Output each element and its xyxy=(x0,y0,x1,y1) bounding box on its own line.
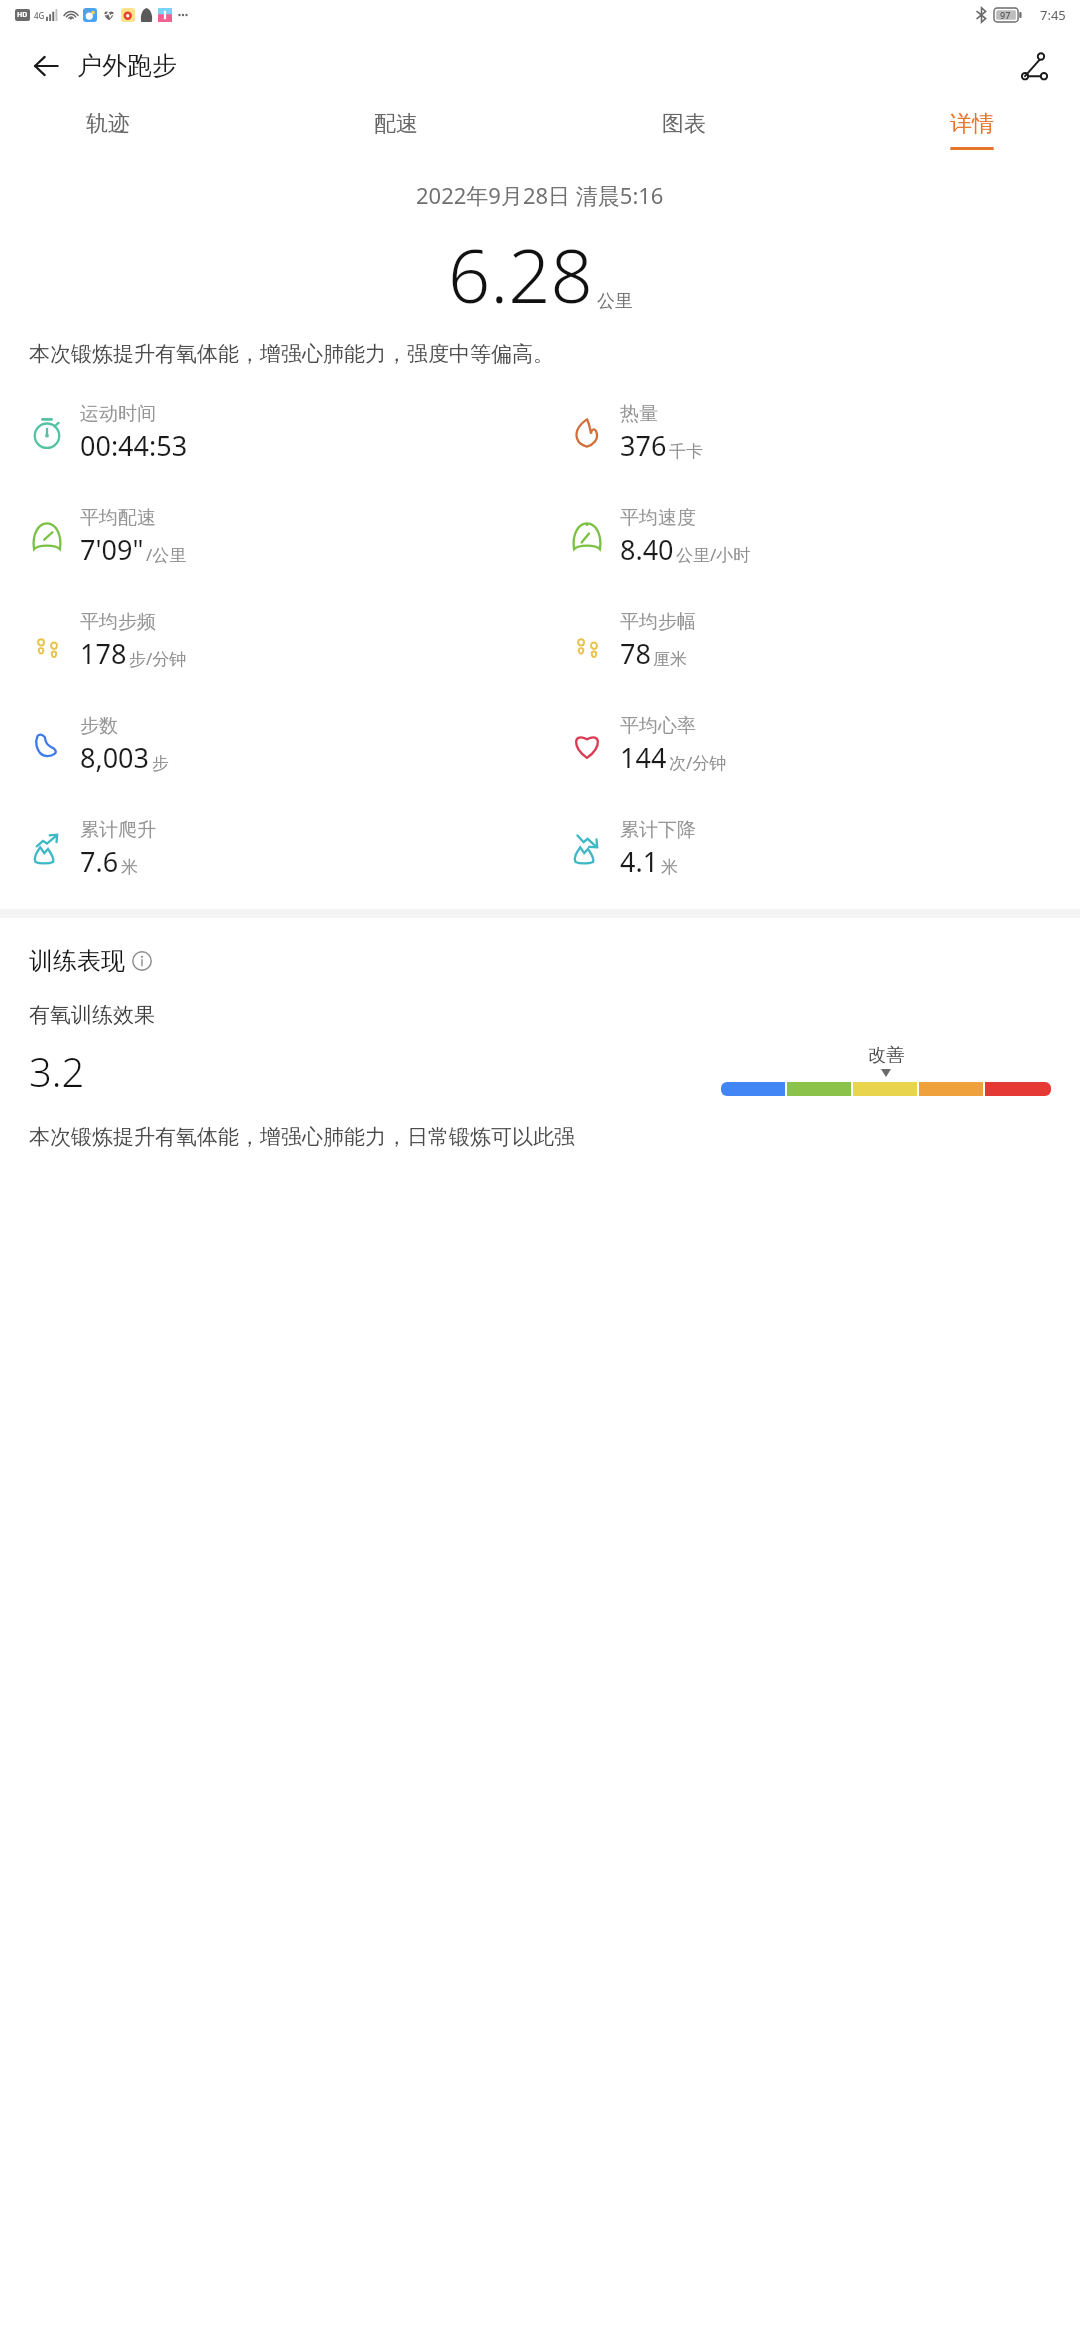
button[interactable]: 平均步幅 xyxy=(540,589,1080,693)
staticText: 户外跑步 xyxy=(77,50,177,81)
button[interactable]: 平均速度 xyxy=(540,485,1080,589)
staticText: 2022年9月28日 清晨5:16 xyxy=(416,180,664,210)
staticText: 平均速度 xyxy=(620,506,696,530)
staticText: HD xyxy=(17,10,28,20)
staticText: 步数 xyxy=(80,714,118,738)
button[interactable]: 图表 xyxy=(656,102,712,158)
staticText: 97 xyxy=(1000,9,1011,21)
staticText: 7'09" xyxy=(80,531,144,568)
button[interactable]: 热量 xyxy=(540,381,1080,485)
staticText: 平均心率 xyxy=(620,714,696,738)
staticText: 运动时间 xyxy=(80,402,156,426)
staticText: 热量 xyxy=(620,402,658,426)
staticText: 144 xyxy=(620,739,667,776)
staticText: 步 xyxy=(152,753,169,774)
staticText: 6.28 xyxy=(448,224,593,325)
staticText: 7:45 xyxy=(1040,6,1066,24)
button[interactable]: 返回 xyxy=(24,44,68,88)
button[interactable]: 轨迹 xyxy=(80,102,136,158)
staticText: 米 xyxy=(121,857,138,878)
staticText: 本次锻炼提升有氧体能，增强心肺能力，强度中等偏高。 xyxy=(29,341,1051,367)
staticText: 详情 xyxy=(950,110,994,138)
staticText: 4G xyxy=(34,10,45,21)
staticText: 次/分钟 xyxy=(669,751,727,774)
staticText: 配速 xyxy=(374,110,418,138)
button[interactable]: 训练表现 xyxy=(29,946,152,976)
staticText: 训练表现 xyxy=(29,946,125,976)
staticText: 8,003 xyxy=(80,739,150,776)
button[interactable]: 平均步频 xyxy=(0,589,540,693)
staticText: 平均配速 xyxy=(80,506,156,530)
staticText: 累计爬升 xyxy=(80,818,156,842)
button[interactable]: 配速 xyxy=(368,102,424,158)
staticText: 累计下降 xyxy=(620,818,696,842)
button[interactable]: 平均配速 xyxy=(0,485,540,589)
button[interactable]: 平均心率 xyxy=(540,693,1080,797)
staticText: 3.2 xyxy=(29,1044,85,1098)
staticText: /公里 xyxy=(146,543,187,566)
staticText: 公里/小时 xyxy=(676,543,751,566)
staticText: 178 xyxy=(80,635,127,672)
staticText: 步/分钟 xyxy=(129,647,187,670)
staticText: 有氧训练效果 xyxy=(29,1002,155,1028)
staticText: 平均步幅 xyxy=(620,610,696,634)
staticText: 厘米 xyxy=(653,649,687,670)
button[interactable]: 详情 xyxy=(944,102,1000,158)
other: 说明 xyxy=(132,951,152,971)
staticText: 78 xyxy=(620,635,651,672)
staticText: 轨迹 xyxy=(86,110,130,138)
button[interactable]: 分享 xyxy=(1012,44,1056,88)
staticText: 7.6 xyxy=(80,843,119,880)
staticText: 图表 xyxy=(662,110,706,138)
staticText: 00:44:53 xyxy=(80,427,188,464)
button[interactable]: 运动时间 xyxy=(0,381,540,485)
staticText: 千卡 xyxy=(669,441,703,462)
staticText: 平均步频 xyxy=(80,610,156,634)
staticText: 改善 xyxy=(868,1044,904,1067)
staticText: 米 xyxy=(661,857,678,878)
button[interactable]: 步数 xyxy=(0,693,540,797)
button[interactable]: 累计下降 xyxy=(540,797,1080,901)
staticText: 376 xyxy=(620,427,667,464)
staticText: 公里 xyxy=(597,290,633,313)
staticText: 8.40 xyxy=(620,531,674,568)
staticText: 本次锻炼提升有氧体能，增强心肺能力，日常锻炼可以此强 xyxy=(29,1124,575,1150)
staticText: 4.1 xyxy=(620,843,659,880)
button[interactable]: 累计爬升 xyxy=(0,797,540,901)
